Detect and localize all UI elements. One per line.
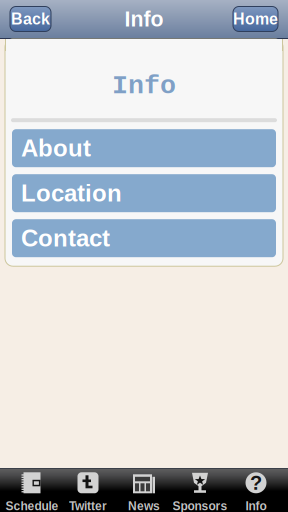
staticText: Sponsors bbox=[172, 499, 227, 512]
staticText: Schedule bbox=[5, 499, 58, 512]
button[interactable]: Sponsors bbox=[172, 469, 228, 512]
button[interactable]: News bbox=[116, 469, 172, 512]
staticText: News bbox=[128, 499, 160, 512]
staticText: Info bbox=[124, 7, 163, 31]
button[interactable]: Back bbox=[10, 6, 51, 31]
button[interactable]: Schedule bbox=[4, 469, 60, 512]
button[interactable]: Location bbox=[12, 174, 276, 212]
staticText: Info bbox=[245, 499, 266, 512]
staticText: About bbox=[21, 135, 91, 162]
staticText: Location bbox=[21, 180, 122, 207]
staticText: Contact bbox=[21, 225, 110, 252]
staticText: Back bbox=[11, 10, 50, 28]
button[interactable]: Twitter bbox=[60, 469, 116, 512]
staticText: ? bbox=[250, 472, 262, 494]
staticText: Home bbox=[233, 10, 278, 28]
button[interactable]: Home bbox=[233, 6, 278, 31]
staticText: Twitter bbox=[69, 499, 107, 512]
button[interactable]: Contact bbox=[12, 219, 276, 257]
staticText: Info bbox=[112, 71, 176, 101]
button[interactable]: About bbox=[12, 129, 276, 167]
button[interactable]: ? bbox=[228, 469, 284, 512]
